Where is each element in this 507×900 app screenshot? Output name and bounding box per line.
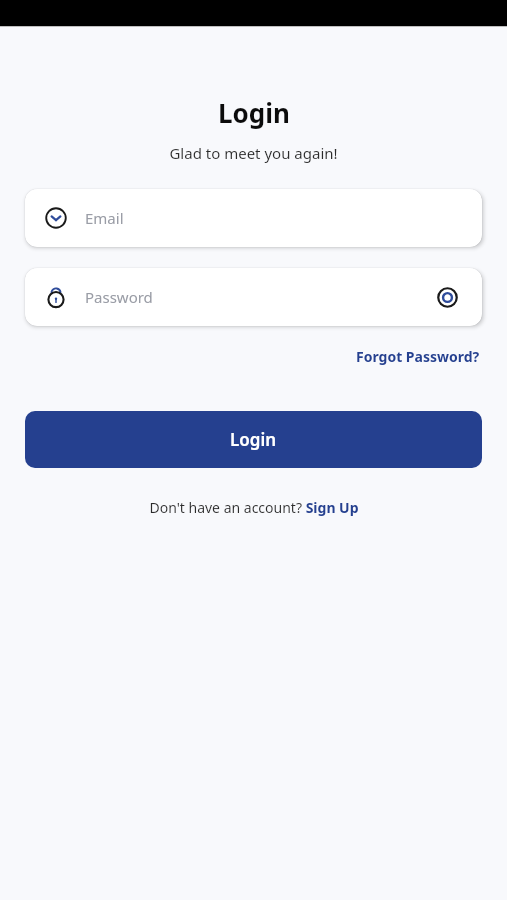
staticText: Glad to meet you again! (169, 143, 338, 163)
staticText: Password (85, 287, 432, 307)
button[interactable]: Login (25, 411, 482, 468)
button[interactable]: Forgot Password? (354, 344, 482, 369)
button[interactable]: Don't have an account? Sign Up (146, 495, 362, 520)
staticText: Email (85, 208, 462, 228)
staticText: Don't have an account? Sign Up (149, 498, 359, 517)
button[interactable]: Show password (432, 282, 462, 312)
other: Password (45, 286, 67, 308)
staticText: Forgot Password? (356, 347, 480, 366)
button[interactable]: Password (25, 268, 482, 326)
button[interactable]: Email (25, 189, 482, 247)
other: Email (45, 207, 67, 229)
staticText: Login (230, 428, 277, 451)
staticText: Login (218, 95, 290, 130)
